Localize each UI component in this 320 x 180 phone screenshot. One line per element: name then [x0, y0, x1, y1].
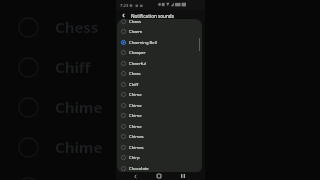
staticText: Charming Bell — [129, 40, 157, 46]
button[interactable]: Chocolate — [117, 163, 202, 173]
button[interactable]: Recent apps — [179, 172, 187, 180]
button[interactable]: Cheerful — [117, 58, 202, 69]
staticText: Chime — [129, 92, 142, 98]
staticText: Cheaper — [129, 50, 146, 56]
button[interactable]: Chime — [117, 110, 202, 121]
button[interactable]: Chaos — [117, 19, 202, 27]
staticText: Chess — [55, 17, 99, 37]
staticText: Chaos — [129, 19, 142, 25]
button[interactable]: Cheaper — [117, 47, 202, 58]
button[interactable]: Chime — [117, 89, 202, 100]
staticText: Chime — [129, 124, 142, 130]
staticText: Charm — [129, 29, 143, 35]
staticText: Chiff — [129, 82, 139, 88]
staticText: Chime — [129, 103, 142, 109]
button[interactable]: Chime — [117, 121, 202, 132]
staticText: Chiff — [55, 57, 91, 77]
button[interactable]: Chimes — [117, 131, 202, 142]
button[interactable]: Chirp — [117, 152, 202, 163]
staticText: Cheerful — [129, 61, 146, 67]
button[interactable]: Navigate back — [131, 172, 139, 180]
staticText: Chocolate — [129, 166, 149, 172]
staticText: Chimes — [129, 145, 144, 151]
button[interactable]: Charming Bell — [117, 37, 202, 48]
staticText: Chime — [55, 137, 103, 157]
staticText: Chirp — [129, 155, 140, 161]
button[interactable]: Back — [119, 11, 128, 20]
staticText: Notification sounds — [131, 13, 174, 19]
button[interactable]: Chiff — [117, 79, 202, 90]
staticText: Chimes — [129, 134, 144, 140]
button[interactable]: Charm — [117, 26, 202, 37]
staticText: Chess — [129, 71, 141, 77]
button[interactable]: Home — [155, 172, 163, 180]
button[interactable]: Chime — [117, 100, 202, 111]
button[interactable]: Chimes — [117, 142, 202, 153]
staticText: Chime — [129, 113, 142, 119]
staticText: Chime — [55, 97, 103, 117]
staticText: 7:23 — [120, 3, 129, 9]
button[interactable]: Chess — [117, 68, 202, 79]
